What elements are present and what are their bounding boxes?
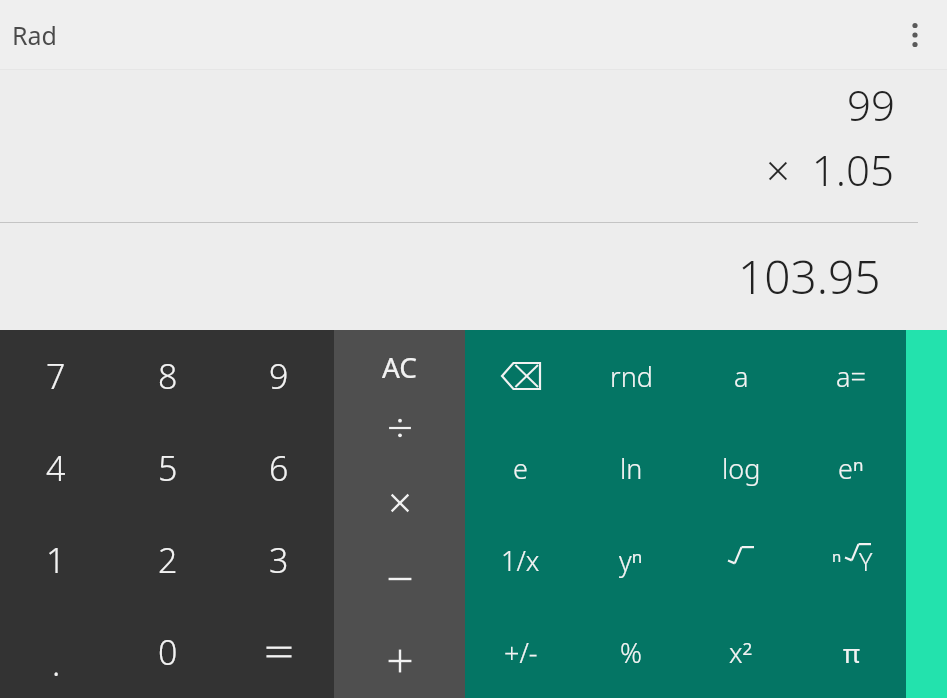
staticText: x2: [729, 634, 753, 671]
staticText: 103.95: [738, 245, 881, 308]
staticText: a=: [836, 358, 866, 395]
button[interactable]: More options: [891, 11, 939, 59]
staticText: × 1.05: [766, 141, 895, 198]
button[interactable]: e: [465, 422, 576, 514]
staticText: ln: [620, 450, 643, 487]
button[interactable]: .: [0, 606, 112, 698]
button[interactable]: 1/x: [465, 514, 576, 606]
button[interactable]: 0: [112, 606, 223, 698]
staticText: Y: [859, 544, 873, 578]
staticText: log: [722, 450, 761, 487]
button[interactable]: 4: [0, 422, 112, 514]
button[interactable]: 2: [112, 514, 223, 606]
staticText: 9: [269, 353, 289, 399]
button[interactable]: Multiply: [334, 476, 465, 550]
staticText: e: [513, 450, 528, 487]
staticText: .: [52, 640, 61, 686]
button[interactable]: Add: [334, 624, 465, 698]
staticText: 4: [46, 445, 66, 491]
staticText: 1: [46, 537, 66, 583]
button[interactable]: 7: [0, 330, 112, 422]
button[interactable]: a=: [796, 330, 906, 422]
button[interactable]: 5: [112, 422, 223, 514]
staticText: 7: [46, 353, 66, 399]
staticText: 8: [158, 353, 178, 399]
button[interactable]: yn: [576, 514, 686, 606]
button[interactable]: 6: [223, 422, 334, 514]
button[interactable]: Backspace: [465, 330, 576, 422]
staticText: Rad: [12, 18, 57, 52]
staticText: n: [832, 546, 842, 566]
staticText: 1/x: [501, 542, 540, 579]
staticText: 5: [158, 445, 178, 491]
staticText: 2: [158, 537, 178, 583]
staticText: 99: [847, 76, 895, 133]
staticText: +/-: [504, 634, 538, 671]
button[interactable]: en: [796, 422, 906, 514]
button[interactable]: 3: [223, 514, 334, 606]
button[interactable]: π: [796, 606, 906, 698]
staticText: %: [620, 634, 642, 671]
staticText: a: [734, 358, 749, 395]
button[interactable]: Subtract: [334, 550, 465, 624]
staticText: rnd: [610, 358, 653, 395]
button[interactable]: Rad: [8, 12, 61, 58]
staticText: en: [838, 450, 864, 487]
staticText: 3: [269, 537, 289, 583]
button[interactable]: 9: [223, 330, 334, 422]
button[interactable]: 8: [112, 330, 223, 422]
button[interactable]: +/-: [465, 606, 576, 698]
staticText: π: [843, 635, 860, 670]
button[interactable]: 1: [0, 514, 112, 606]
button[interactable]: Equals: [223, 606, 334, 698]
button[interactable]: Square root: [686, 514, 796, 606]
button[interactable]: ln: [576, 422, 686, 514]
button[interactable]: a: [686, 330, 796, 422]
button[interactable]: x2: [686, 606, 796, 698]
button[interactable]: AC: [334, 330, 465, 403]
staticText: yn: [619, 542, 643, 579]
staticText: 6: [269, 445, 289, 491]
staticText: AC: [382, 348, 418, 386]
button[interactable]: %: [576, 606, 686, 698]
button[interactable]: nth root: [796, 514, 906, 606]
button[interactable]: log: [686, 422, 796, 514]
button[interactable]: Divide: [334, 403, 465, 476]
staticText: 0: [158, 629, 178, 675]
button[interactable]: rnd: [576, 330, 686, 422]
